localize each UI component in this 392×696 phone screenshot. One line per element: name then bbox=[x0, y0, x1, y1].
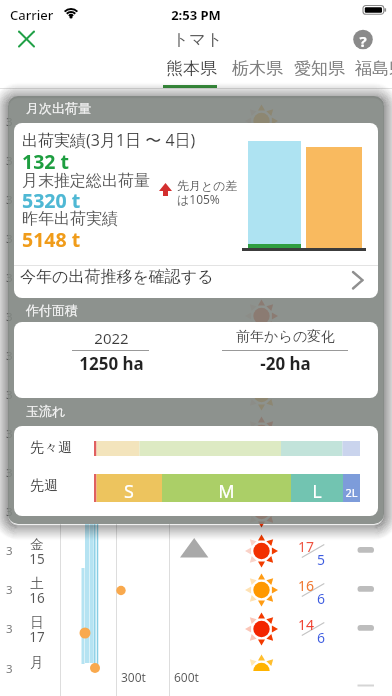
staticText: 愛知県 bbox=[294, 58, 345, 79]
staticText: 今年の出荷推移を確認する bbox=[20, 267, 214, 287]
staticText: 3 bbox=[6, 621, 13, 637]
staticText: 先々週 bbox=[30, 439, 72, 457]
staticText: 3 bbox=[6, 661, 13, 677]
button[interactable] bbox=[0, 649, 392, 688]
staticText: 600t bbox=[174, 669, 199, 685]
staticText: 日 bbox=[30, 614, 44, 631]
staticText: 3 bbox=[6, 231, 13, 247]
button[interactable] bbox=[350, 60, 392, 88]
staticText: 5320 t bbox=[22, 187, 81, 214]
staticText: 月 bbox=[30, 654, 44, 671]
staticText: 月末推定総出荷量 bbox=[22, 171, 150, 191]
staticText: 栃木県 bbox=[232, 58, 283, 79]
staticText: 3 bbox=[6, 114, 13, 130]
staticText: 6 bbox=[317, 589, 326, 608]
staticText: 3 bbox=[6, 543, 13, 559]
staticText: 1250 ha bbox=[79, 352, 144, 375]
staticText: 17 bbox=[29, 628, 45, 646]
staticText: 3 bbox=[6, 387, 13, 403]
button[interactable] bbox=[288, 60, 350, 88]
staticText: 132 t bbox=[22, 148, 69, 175]
staticText: 作付面積 bbox=[26, 302, 78, 318]
staticText: 3 bbox=[6, 309, 13, 325]
staticText: 6 bbox=[317, 628, 326, 647]
staticText: 福島県 bbox=[355, 58, 392, 79]
button[interactable] bbox=[0, 609, 392, 648]
staticText: S bbox=[124, 479, 134, 504]
staticText: 2:53 PM bbox=[171, 6, 221, 24]
staticText: 土 bbox=[30, 575, 44, 592]
staticText: トマト bbox=[172, 29, 223, 50]
staticText: 月次出荷量 bbox=[26, 100, 91, 116]
button[interactable] bbox=[14, 264, 378, 298]
staticText: 前年からの変化 bbox=[236, 328, 335, 346]
staticText: 金 bbox=[30, 536, 44, 553]
staticText: 先月との差 bbox=[177, 178, 238, 193]
staticText: 17 bbox=[298, 537, 315, 556]
staticText: Carrier bbox=[10, 6, 54, 24]
staticText: 14 bbox=[298, 615, 315, 634]
button[interactable] bbox=[160, 60, 222, 88]
staticText: 3 bbox=[6, 192, 13, 208]
staticText: 3 bbox=[6, 270, 13, 286]
staticText: M bbox=[218, 479, 235, 504]
staticText: ? bbox=[359, 31, 367, 51]
staticText: 出荷実績(3月1日 〜 4日) bbox=[22, 129, 196, 151]
button[interactable] bbox=[10, 26, 42, 58]
staticText: 玉流れ bbox=[26, 403, 66, 419]
staticText: 5 bbox=[317, 550, 326, 569]
staticText: 300t bbox=[121, 669, 146, 685]
button[interactable] bbox=[346, 26, 378, 58]
staticText: 3 bbox=[6, 582, 13, 598]
staticText: -20 ha bbox=[260, 352, 311, 375]
button[interactable] bbox=[0, 570, 392, 609]
staticText: 3 bbox=[6, 426, 13, 442]
staticText: 熊本県 bbox=[166, 58, 217, 79]
staticText: 3 bbox=[6, 504, 13, 520]
staticText: 16 bbox=[29, 589, 45, 607]
staticText: 3 bbox=[6, 465, 13, 481]
staticText: 3 bbox=[6, 348, 13, 364]
staticText: 15 bbox=[29, 550, 45, 568]
staticText: 2022 bbox=[94, 328, 129, 348]
staticText: 昨年出荷実績 bbox=[22, 209, 118, 229]
staticText: L bbox=[312, 479, 322, 504]
staticText: 16 bbox=[298, 576, 315, 595]
staticText: 2L bbox=[345, 485, 358, 500]
staticText: は105% bbox=[177, 191, 220, 207]
staticText: 5148 t bbox=[22, 226, 81, 253]
staticText: 3 bbox=[6, 153, 13, 169]
button[interactable] bbox=[226, 60, 288, 88]
staticText: 先週 bbox=[30, 477, 58, 495]
button[interactable] bbox=[0, 531, 392, 570]
